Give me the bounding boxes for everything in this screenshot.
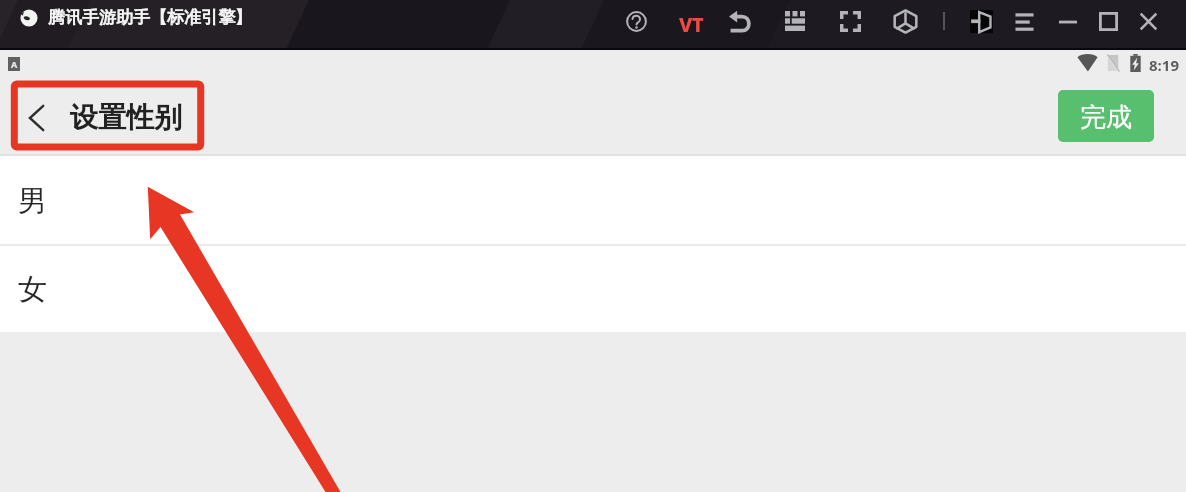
button[interactable]: 男 xyxy=(0,156,1186,244)
button[interactable]: Fullscreen xyxy=(835,6,865,36)
button[interactable]: 完成 xyxy=(1058,90,1154,142)
button[interactable]: 女 xyxy=(0,244,1186,332)
button[interactable]: Apps xyxy=(780,6,810,36)
button[interactable]: VT status xyxy=(675,8,707,40)
button[interactable]: Help xyxy=(621,6,651,36)
button[interactable]: Close xyxy=(1133,6,1163,36)
button[interactable]: Pin on top xyxy=(966,6,996,36)
button[interactable]: Back xyxy=(725,6,755,36)
button[interactable]: Multi window xyxy=(890,6,920,36)
staticText: 女 xyxy=(18,271,47,308)
staticText: A xyxy=(11,58,18,70)
staticText: VT xyxy=(679,11,704,38)
staticText: 8:19 xyxy=(1149,55,1179,75)
button[interactable]: Minimize xyxy=(1053,6,1083,36)
staticText: 男 xyxy=(18,183,47,220)
staticText: 设置性别 xyxy=(70,100,182,135)
staticText: 完成 xyxy=(1080,101,1132,134)
staticText: 腾讯手游助手【标准引擎】 xyxy=(48,7,252,28)
button[interactable]: Maximize xyxy=(1093,6,1123,36)
button[interactable]: 设置性别 xyxy=(66,79,186,154)
button[interactable]: Back xyxy=(14,91,66,143)
button[interactable]: Menu xyxy=(1009,6,1039,36)
